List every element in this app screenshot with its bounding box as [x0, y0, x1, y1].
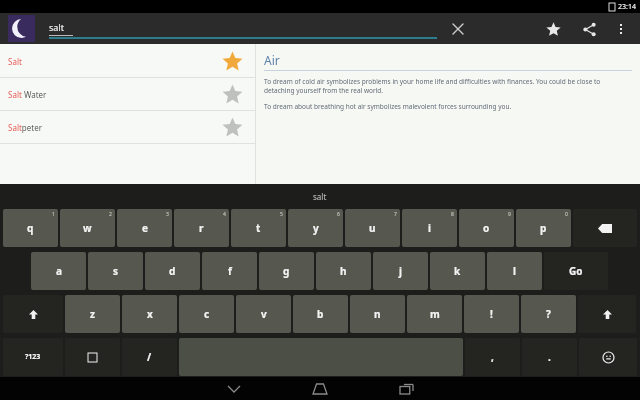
- button[interactable]: /: [122, 338, 177, 376]
- button[interactable]: f: [202, 252, 257, 290]
- staticText: o: [483, 221, 490, 235]
- button[interactable]: l: [487, 252, 542, 290]
- staticText: g: [283, 264, 290, 278]
- button[interactable]: b: [293, 295, 348, 333]
- button[interactable]: z: [65, 295, 120, 333]
- staticText: .: [548, 350, 551, 364]
- button[interactable]: ,: [465, 338, 520, 376]
- staticText: f: [228, 264, 232, 278]
- button[interactable]: Recent apps: [394, 377, 418, 400]
- button[interactable]: d: [145, 252, 200, 290]
- staticText: q: [27, 221, 34, 235]
- staticText: h: [340, 264, 347, 278]
- button[interactable]: s: [88, 252, 143, 290]
- button[interactable]: Share: [576, 16, 602, 42]
- button[interactable]: Hide keyboard: [222, 377, 246, 400]
- button[interactable]: g: [259, 252, 314, 290]
- staticText: i: [428, 221, 431, 235]
- button[interactable]: n: [350, 295, 405, 333]
- staticText: z: [90, 307, 95, 321]
- button[interactable]: Language: [65, 338, 120, 376]
- button[interactable]: i: [402, 209, 457, 247]
- staticText: /: [147, 350, 152, 364]
- staticText: l: [513, 264, 516, 278]
- staticText: w: [83, 221, 92, 235]
- staticText: Salt Water: [8, 89, 47, 100]
- button[interactable]: q: [3, 209, 58, 247]
- staticText: b: [317, 307, 324, 321]
- button[interactable]: ?123: [3, 338, 63, 376]
- button[interactable]: Home: [308, 377, 332, 400]
- staticText: 6: [337, 211, 340, 218]
- button[interactable]: c: [179, 295, 234, 333]
- staticText: p: [540, 221, 547, 235]
- button[interactable]: o: [459, 209, 514, 247]
- button[interactable]: Salt Water: [0, 78, 255, 111]
- button[interactable]: h: [316, 252, 371, 290]
- staticText: 23:14: [618, 2, 636, 12]
- button[interactable]: Saltpeter: [0, 111, 255, 144]
- button[interactable]: k: [430, 252, 485, 290]
- staticText: n: [374, 307, 381, 321]
- staticText: 2: [109, 211, 112, 218]
- button[interactable]: t: [231, 209, 286, 247]
- staticText: 9: [508, 211, 511, 218]
- staticText: salt: [49, 21, 64, 33]
- staticText: Saltpeter: [8, 122, 42, 133]
- staticText: c: [204, 307, 210, 321]
- staticText: !: [490, 307, 493, 321]
- staticText: Air: [264, 52, 280, 68]
- staticText: ?123: [25, 352, 41, 362]
- staticText: 4: [223, 211, 226, 218]
- staticText: x: [147, 307, 153, 321]
- button[interactable]: a: [31, 252, 86, 290]
- staticText: j: [399, 264, 402, 278]
- button[interactable]: More options: [610, 18, 632, 40]
- button[interactable]: Backspace: [573, 209, 637, 247]
- button[interactable]: Shift: [578, 295, 636, 333]
- staticText: ?: [546, 307, 551, 321]
- staticText: 0: [565, 211, 568, 218]
- staticText: 8: [451, 211, 454, 218]
- staticText: y: [313, 221, 319, 235]
- staticText: To dream about breathing hot air symboli…: [264, 102, 512, 111]
- staticText: ,: [491, 350, 494, 364]
- staticText: To dream of cold air symbolizes problems…: [264, 77, 632, 95]
- button[interactable]: u: [345, 209, 400, 247]
- button[interactable]: j: [373, 252, 428, 290]
- staticText: m: [430, 307, 440, 321]
- button[interactable]: App icon: [8, 15, 35, 42]
- staticText: Salt: [8, 56, 22, 67]
- button[interactable]: y: [288, 209, 343, 247]
- staticText: 5: [280, 211, 283, 218]
- staticText: s: [113, 264, 119, 278]
- button[interactable]: Emoji: [579, 338, 637, 376]
- staticText: k: [454, 264, 461, 278]
- staticText: a: [56, 264, 62, 278]
- button[interactable]: p: [516, 209, 571, 247]
- staticText: d: [169, 264, 176, 278]
- button[interactable]: Favorite: [540, 16, 566, 42]
- button[interactable]: Clear: [450, 21, 466, 37]
- staticText: 3: [166, 211, 169, 218]
- staticText: e: [142, 221, 148, 235]
- staticText: 7: [394, 211, 397, 218]
- button[interactable]: r: [174, 209, 229, 247]
- button[interactable]: .: [522, 338, 577, 376]
- button[interactable]: salt: [49, 13, 540, 44]
- button[interactable]: m: [407, 295, 462, 333]
- staticText: 1: [52, 211, 55, 218]
- button[interactable]: !: [464, 295, 519, 333]
- button[interactable]: w: [60, 209, 115, 247]
- button[interactable]: e: [117, 209, 172, 247]
- button[interactable]: salt: [313, 191, 327, 202]
- button[interactable]: x: [122, 295, 177, 333]
- button[interactable]: Salt: [0, 45, 255, 78]
- button[interactable]: Shift: [3, 295, 63, 333]
- staticText: u: [369, 221, 376, 235]
- button[interactable]: v: [236, 295, 291, 333]
- button[interactable]: ?: [521, 295, 576, 333]
- button[interactable]: Go: [544, 252, 608, 290]
- staticText: v: [261, 307, 267, 321]
